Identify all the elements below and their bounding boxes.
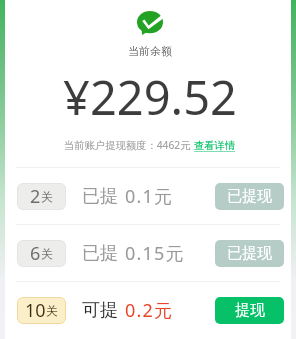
button[interactable]: 查看详情 (194, 139, 236, 152)
staticText: 10 (25, 298, 46, 323)
button[interactable]: 提现 (215, 297, 284, 324)
staticText: 已提 (82, 242, 118, 265)
staticText: 已提现 (227, 244, 272, 263)
button[interactable]: 10 (0, 282, 296, 338)
staticText: 已提 (82, 185, 118, 208)
staticText: 当前账户提现额度：4462元 (64, 138, 194, 152)
staticText: 6 (30, 241, 41, 266)
other: Balance (137, 11, 163, 35)
staticText: 0.1元 (125, 184, 174, 209)
button[interactable]: 已提现 (215, 240, 284, 267)
button[interactable]: 6 (0, 225, 296, 281)
staticText: 2 (30, 184, 41, 209)
button[interactable]: 已提现 (215, 183, 284, 210)
staticText: 可提 (82, 299, 118, 322)
staticText: ¥229.52 (63, 65, 237, 129)
staticText: 当前余额 (128, 44, 172, 58)
staticText: 关 (46, 303, 58, 318)
staticText: 0.15元 (125, 241, 185, 266)
staticText: 0.2元 (125, 298, 174, 323)
staticText: 已提现 (227, 187, 272, 206)
staticText: 查看详情 (194, 139, 236, 152)
button[interactable]: 2 (0, 168, 296, 224)
staticText: 提现 (235, 301, 265, 320)
staticText: 关 (41, 189, 53, 204)
staticText: 关 (41, 246, 53, 261)
